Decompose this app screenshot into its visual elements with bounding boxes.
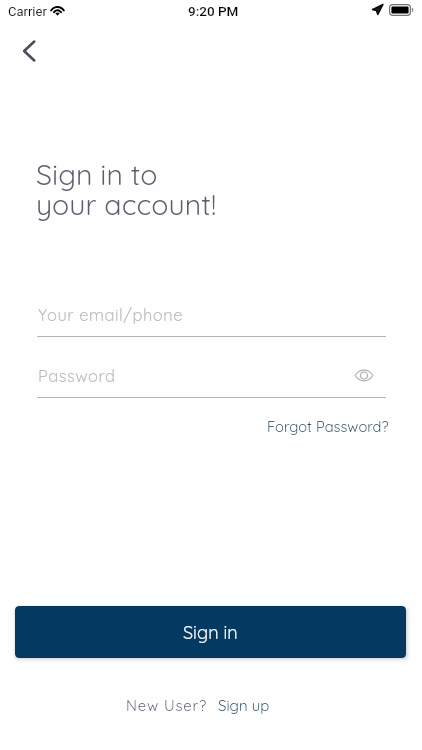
staticText: New User? [126,696,208,715]
button[interactable]: Show password [351,362,377,388]
staticText: Carrier [8,4,47,19]
staticText: Forgot Password? [267,417,389,435]
staticText: Your email/phone [38,304,184,325]
button[interactable]: Sign in [15,606,406,658]
staticText: Password [38,365,116,386]
staticText: 9:20 PM [188,3,239,19]
button[interactable]: Forgot Password? [259,412,397,440]
staticText: Sign up [218,696,270,715]
button[interactable]: Back [7,29,51,73]
staticText: Sign in [183,621,238,644]
button[interactable]: Sign up [218,696,270,715]
staticText: Sign in to your account! [36,156,217,222]
